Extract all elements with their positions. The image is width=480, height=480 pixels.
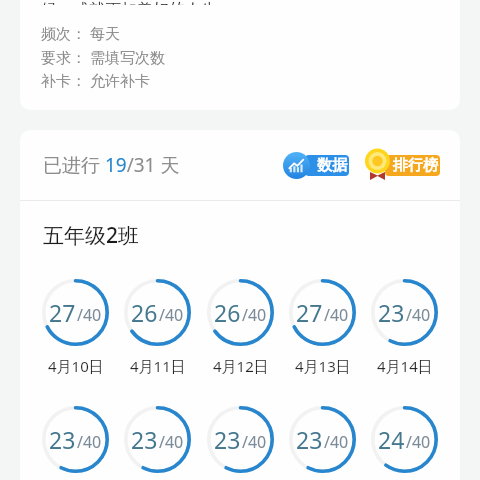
staticText: 24 [378,424,405,455]
staticText: 4月14日 [377,356,433,376]
button[interactable]: 23 [371,279,438,376]
staticText: /40 [406,304,431,326]
staticText: /40 [77,431,102,453]
staticText: 23 [131,424,158,455]
button[interactable]: 23 [207,406,274,473]
button[interactable]: 23 [289,406,356,473]
staticText: /40 [242,431,267,453]
staticText: 23 [296,424,323,455]
staticText: /40 [242,304,267,326]
staticText: /40 [406,431,431,453]
button[interactable]: 26 [124,279,191,376]
staticText: /40 [324,304,349,326]
staticText: 4月11日 [130,356,186,376]
staticText: 排行榜 [393,156,438,175]
staticText: 23 [49,424,76,455]
staticText: /40 [159,431,184,453]
staticText: /40 [159,304,184,326]
staticText: 26 [131,297,158,328]
staticText: 23 [214,424,241,455]
staticText: 五年级2班 [43,221,140,250]
button[interactable]: 27 [42,279,109,376]
staticText: 4月13日 [295,356,351,376]
staticText: 已进行 19/31 天 [43,152,180,178]
button[interactable]: 26 [207,279,274,376]
staticText: 27 [49,297,76,328]
staticText: 26 [214,297,241,328]
button[interactable]: 23 [124,406,191,473]
staticText: 数据 [317,156,347,175]
staticText: 候，成就更加美好的人生。 [41,0,233,5]
button[interactable]: 24 [371,406,438,473]
staticText: 频次： 每天 要求： 需填写次数 补卡： 允许补卡 [41,23,165,90]
staticText: 27 [296,297,323,328]
button[interactable]: 数据 [283,150,349,180]
staticText: 23 [378,297,405,328]
staticText: 4月12日 [213,356,269,376]
button[interactable]: 23 [42,406,109,473]
staticText: /40 [77,304,102,326]
button[interactable]: 排行榜 [365,147,440,183]
staticText: 4月10日 [48,356,104,376]
button[interactable]: 27 [289,279,356,376]
staticText: /40 [324,431,349,453]
